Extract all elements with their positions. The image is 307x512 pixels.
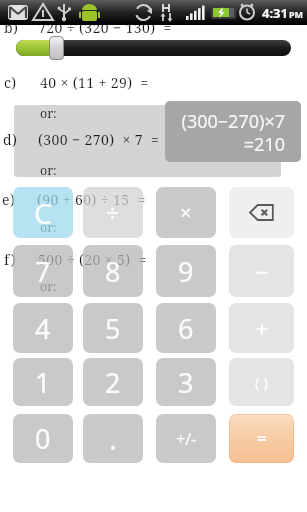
staticText: C	[34, 194, 52, 232]
staticText: ÷	[106, 197, 120, 228]
staticText: or:	[40, 105, 57, 122]
staticText: 3	[178, 364, 194, 401]
staticText: 720 ÷ (320 − 130) =	[38, 18, 172, 37]
staticText: f)	[4, 250, 17, 269]
staticText: (300 − 270) × 7 =	[38, 130, 160, 149]
staticText: 8	[105, 253, 121, 290]
button[interactable]: =	[229, 414, 294, 463]
button[interactable]: 9	[156, 245, 216, 297]
button[interactable]: 3	[156, 358, 216, 406]
button[interactable]: 7	[13, 245, 73, 297]
staticText: e)	[2, 190, 16, 209]
staticText: .	[109, 418, 118, 459]
staticText: 7	[35, 253, 51, 290]
button[interactable]: ÷	[83, 187, 143, 238]
staticText: 4:31	[262, 4, 288, 22]
staticText: ×	[180, 199, 192, 226]
staticText: +/-	[176, 428, 197, 450]
staticText: b)	[4, 18, 19, 37]
button[interactable]: ( )	[229, 358, 294, 406]
button[interactable]: 1	[13, 358, 73, 406]
staticText: −	[255, 255, 269, 288]
button[interactable]: +	[229, 303, 294, 353]
button[interactable]: 5	[83, 303, 143, 353]
staticText: (90 + 60) ÷ 15 =	[37, 190, 146, 209]
staticText: or:	[40, 278, 57, 295]
staticText: =210	[165, 132, 285, 157]
staticText: 6	[178, 310, 194, 347]
staticText: 500 ÷ (20 × 5) =	[38, 250, 147, 269]
button[interactable]: C	[13, 187, 73, 238]
staticText: 4	[35, 310, 51, 347]
staticText: 2	[105, 364, 121, 401]
button[interactable]	[229, 187, 294, 238]
button[interactable]: 2	[83, 358, 143, 406]
button[interactable]: +/-	[156, 414, 216, 463]
button[interactable]: 6	[156, 303, 216, 353]
button[interactable]: 4:31	[0, 0, 307, 25]
button[interactable]: .	[83, 414, 143, 463]
staticText: (300−270)×7	[165, 109, 285, 134]
button[interactable]: ×	[156, 187, 216, 238]
staticText: d)	[3, 130, 18, 149]
staticText: 9	[178, 253, 194, 290]
staticText: ( )	[255, 372, 268, 392]
staticText: 1	[35, 364, 51, 401]
button[interactable]: 8	[83, 245, 143, 297]
staticText: 40 × (11 + 29) =	[40, 73, 149, 92]
button[interactable]	[49, 36, 64, 60]
staticText: or:	[40, 162, 57, 179]
staticText: +	[255, 312, 269, 345]
staticText: 5	[105, 310, 121, 347]
button[interactable]: −	[229, 245, 294, 297]
staticText: or:	[40, 219, 57, 236]
button[interactable]: 4	[13, 303, 73, 353]
staticText: PM	[289, 8, 304, 20]
button[interactable]: 0	[13, 414, 73, 463]
staticText: =	[257, 427, 267, 450]
staticText: c)	[4, 73, 17, 92]
staticText: 0	[35, 420, 51, 457]
